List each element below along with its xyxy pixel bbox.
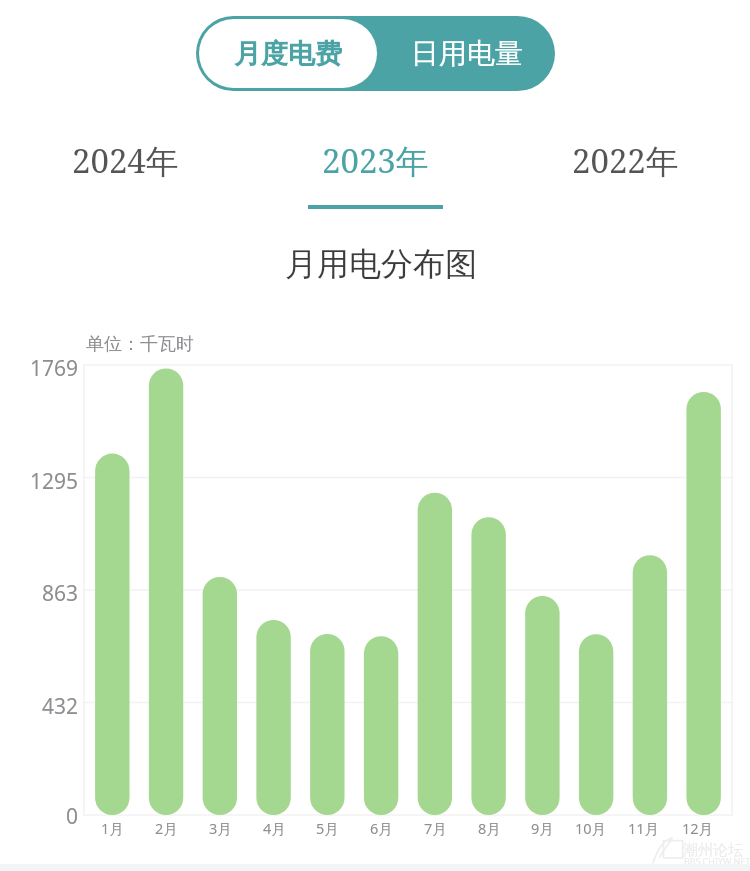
staticText: 6月 <box>370 818 393 838</box>
staticText: 9月 <box>531 818 554 838</box>
staticText: 2024年 <box>72 138 179 183</box>
staticText: 12月 <box>682 818 714 838</box>
staticText: 2022年 <box>572 138 679 183</box>
staticText: 3月 <box>209 818 232 838</box>
staticText: 潮州论坛 <box>683 841 743 860</box>
staticText: 10月 <box>575 818 607 838</box>
staticText: 11月 <box>628 818 660 838</box>
button[interactable]: 月度电费 <box>199 19 377 88</box>
button[interactable]: 日用电量 <box>380 16 554 91</box>
button[interactable]: 2022年 <box>500 138 750 205</box>
button[interactable]: 2024年 <box>0 138 250 205</box>
staticText: 2月 <box>155 818 178 838</box>
staticText: BBS.CHIYW.NET <box>684 855 750 867</box>
staticText: 4月 <box>263 818 286 838</box>
staticText: 单位：千瓦时 <box>86 333 194 356</box>
staticText: 432 <box>42 692 79 718</box>
staticText: 0 <box>66 802 79 828</box>
staticText: 月用电分布图 <box>285 244 477 284</box>
staticText: 2023年 <box>322 138 429 183</box>
other: 月用电分布图表 <box>0 0 750 871</box>
staticText: 863 <box>42 579 79 605</box>
staticText: 1769 <box>30 354 79 380</box>
staticText: 1295 <box>30 467 79 493</box>
staticText: 7月 <box>424 818 447 838</box>
staticText: 8月 <box>478 818 501 838</box>
staticText: 日用电量 <box>411 36 523 71</box>
button[interactable]: 2023年 <box>250 138 500 209</box>
staticText: 1月 <box>101 818 124 838</box>
staticText: 月度电费 <box>234 37 342 71</box>
staticText: 5月 <box>316 818 339 838</box>
